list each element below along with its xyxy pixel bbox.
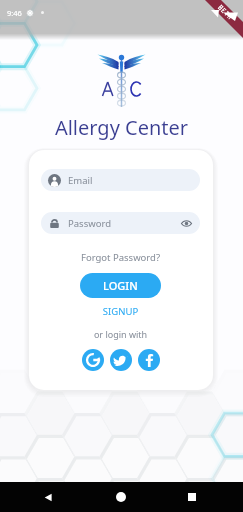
button[interactable]: LOGIN [80, 273, 161, 298]
button[interactable]: Google [82, 349, 104, 371]
staticText: LOGIN [103, 278, 138, 293]
button[interactable]: Home [106, 482, 136, 512]
button[interactable]: Forgot Password? [41, 251, 200, 264]
staticText: Password [68, 217, 111, 230]
staticText: or login with [41, 328, 200, 340]
button[interactable]: Recent apps [177, 482, 207, 512]
button[interactable]: Email [41, 169, 200, 191]
button[interactable]: Back [33, 482, 63, 512]
button[interactable]: SIGNUP [41, 305, 200, 318]
button[interactable]: Facebook [138, 349, 160, 371]
staticText: Email [68, 174, 93, 187]
button[interactable]: Show password [181, 218, 192, 229]
button[interactable]: Password [41, 212, 200, 234]
staticText: Allergy Center [0, 114, 243, 141]
button[interactable]: Twitter [110, 349, 132, 371]
staticText: 9:46 [7, 8, 22, 18]
